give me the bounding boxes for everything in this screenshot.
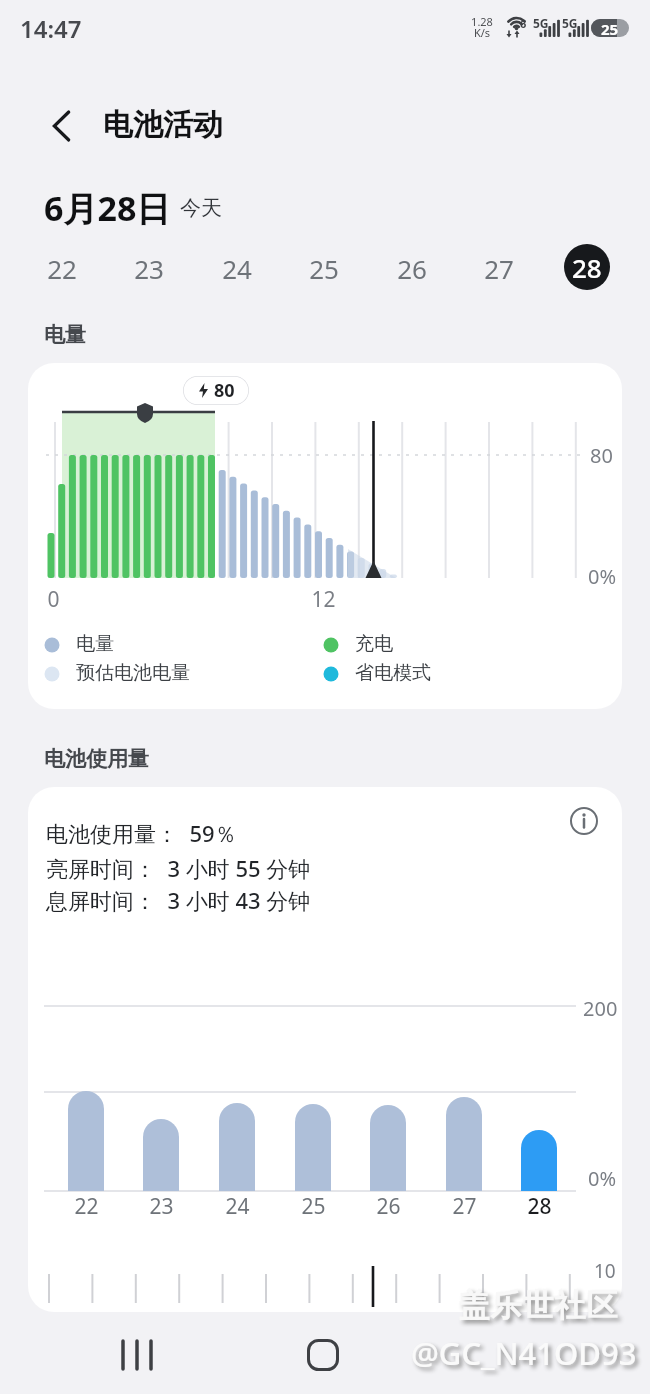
staticText: 5G xyxy=(533,15,549,31)
staticText: 亮屏时间： 3 小时 55 分钟 xyxy=(46,853,311,883)
staticText: 预估电池电量 xyxy=(76,661,190,685)
staticText: 5G xyxy=(562,15,578,31)
staticText: 23 xyxy=(134,251,164,286)
staticText: 1.28 K/s xyxy=(466,14,498,40)
button[interactable]: 23 xyxy=(119,251,179,286)
button[interactable]: 26 xyxy=(382,251,442,286)
staticText: 14:47 xyxy=(20,12,82,45)
staticText: 26 xyxy=(376,1192,401,1221)
staticText: 盖乐世社区 xyxy=(458,1286,618,1325)
button[interactable]: 25 xyxy=(294,251,354,286)
staticText: 电池使用量： 59％ xyxy=(46,818,237,848)
staticText: 12 xyxy=(311,585,336,614)
staticText: 0% xyxy=(588,563,617,590)
staticText: 24 xyxy=(225,1192,250,1221)
staticText: 电量 xyxy=(44,322,86,348)
staticText: 28 xyxy=(527,1192,552,1221)
staticText: 息屏时间： 3 小时 43 分钟 xyxy=(46,885,311,915)
staticText: 今天 xyxy=(180,195,222,221)
staticText: 22 xyxy=(74,1192,99,1221)
button[interactable]: 28 xyxy=(564,244,610,290)
button[interactable]: 22 xyxy=(32,251,92,286)
staticText: 24 xyxy=(222,251,252,286)
button[interactable]: 24 xyxy=(207,251,267,286)
staticText: 80 xyxy=(590,442,613,469)
button[interactable] xyxy=(40,104,84,148)
staticText: 电池使用量 xyxy=(44,746,149,772)
button[interactable] xyxy=(296,1330,350,1380)
staticText: 0% xyxy=(588,1165,617,1192)
staticText: 省电模式 xyxy=(355,661,431,685)
staticText: 6月28日 xyxy=(44,185,171,231)
staticText: 22 xyxy=(47,251,77,286)
staticText: 25 xyxy=(301,1192,326,1221)
staticText: 电池活动 xyxy=(103,106,223,144)
staticText: 10 xyxy=(594,1258,616,1284)
staticText: 电量 xyxy=(76,632,114,656)
staticText: 25 xyxy=(309,251,339,286)
staticText: 80 xyxy=(214,378,235,403)
staticText: 23 xyxy=(149,1192,174,1221)
button[interactable]: 27 xyxy=(469,251,529,286)
staticText: 充电 xyxy=(355,632,393,656)
staticText: 27 xyxy=(452,1192,477,1221)
staticText: @GC_N41OD93 xyxy=(411,1332,637,1374)
staticText: 26 xyxy=(397,251,427,286)
staticText: 25 xyxy=(601,19,619,37)
button[interactable] xyxy=(110,1330,164,1380)
staticText: 27 xyxy=(484,251,514,286)
staticText: 6 xyxy=(520,16,527,31)
staticText: 0 xyxy=(47,585,60,614)
staticText: 28 xyxy=(572,250,602,285)
button[interactable] xyxy=(566,803,602,839)
staticText: 200 xyxy=(583,995,618,1022)
